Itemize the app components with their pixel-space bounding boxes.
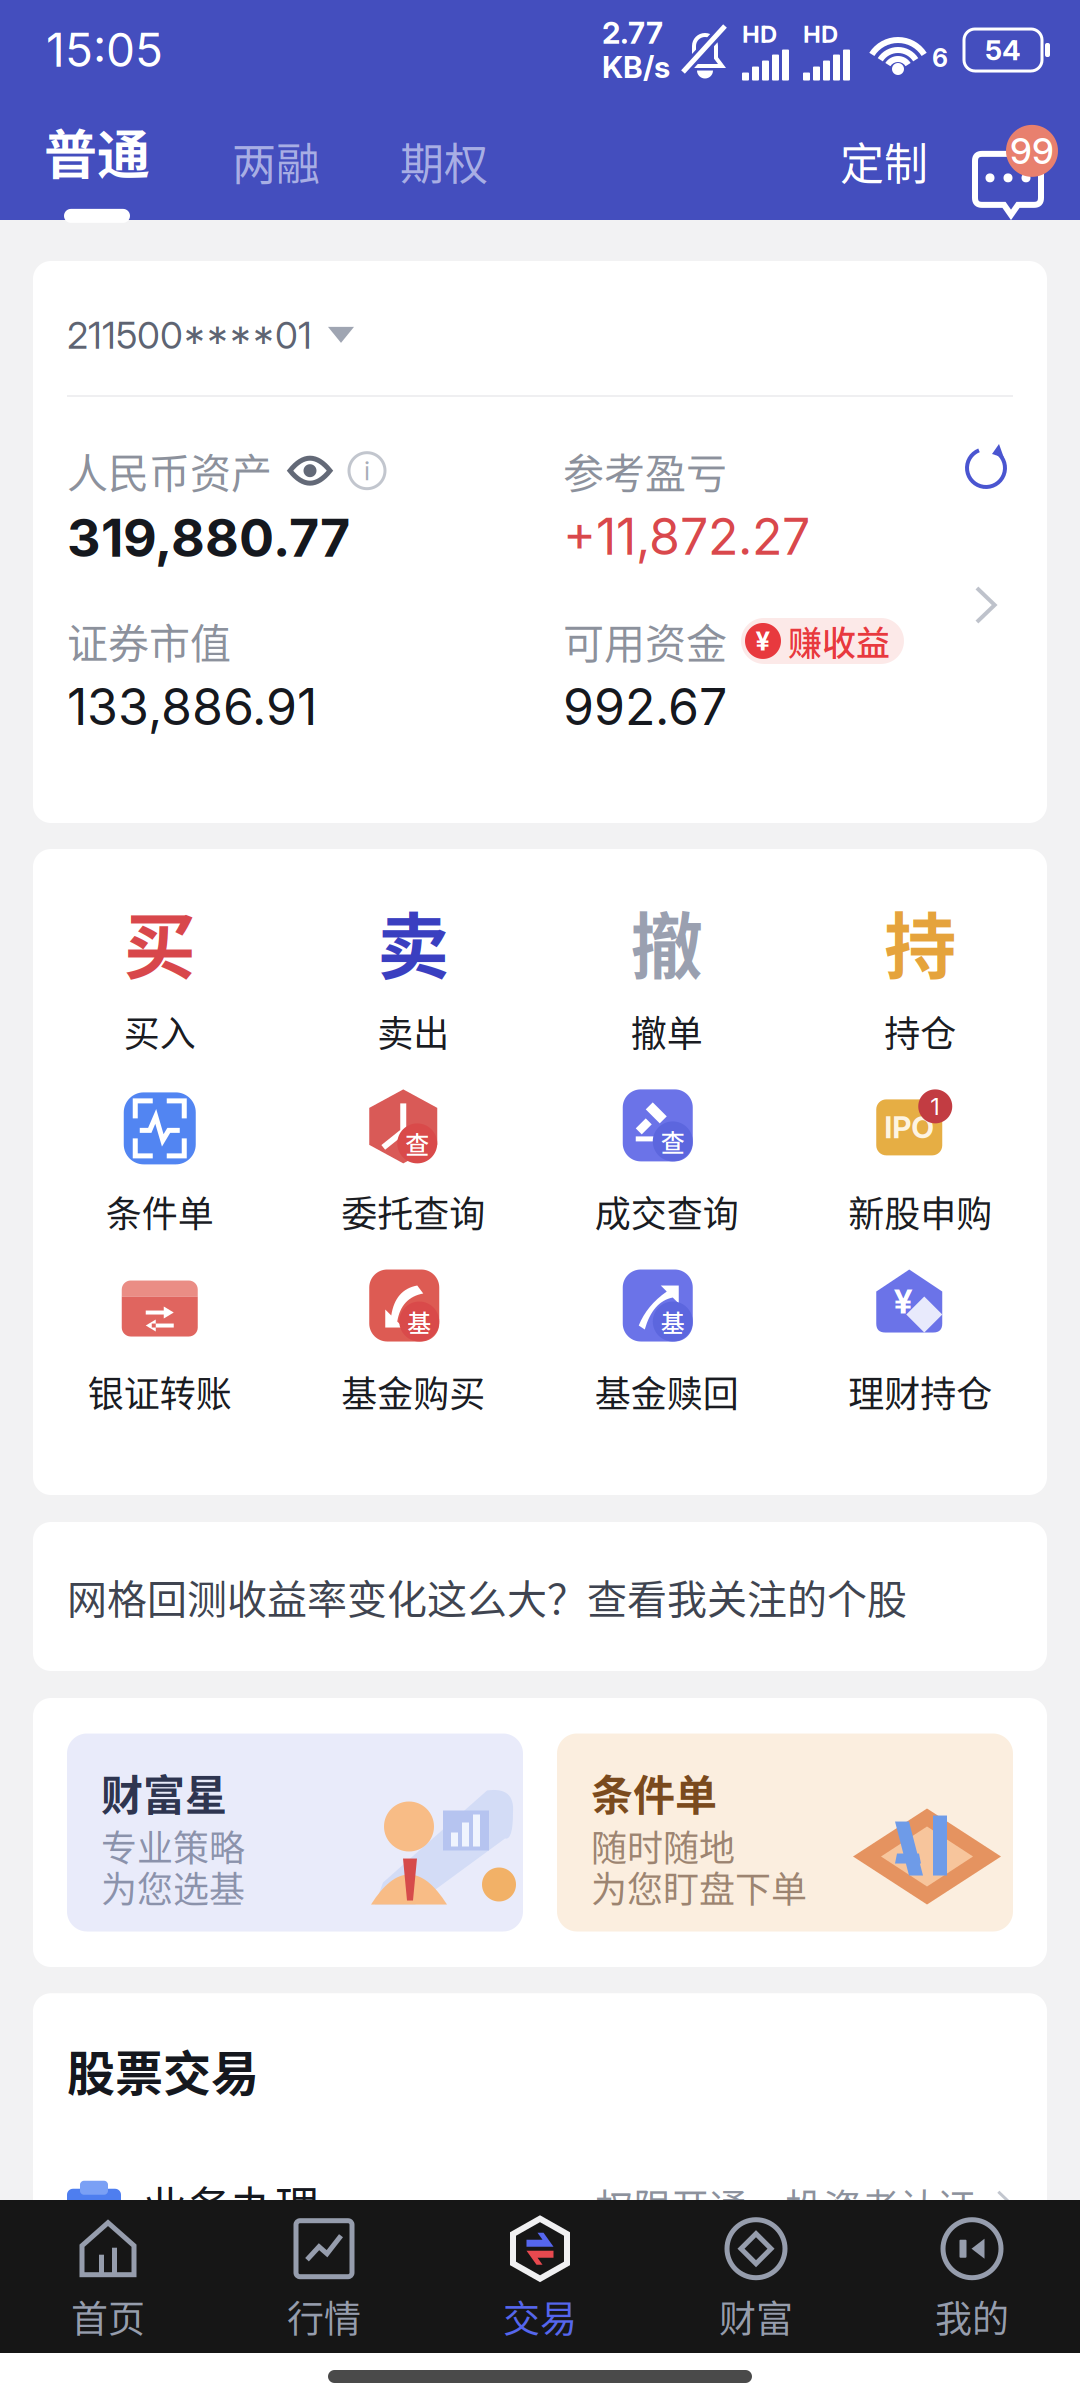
- staticText: i: [364, 455, 370, 486]
- staticText: 卖: [377, 889, 449, 993]
- button[interactable]: 我的: [864, 2194, 1080, 2359]
- staticText: 首页: [71, 2290, 145, 2343]
- button[interactable]: 消息: [928, 125, 1080, 223]
- button[interactable]: 交易: [432, 2194, 648, 2359]
- staticText: 查: [661, 1124, 685, 1159]
- button[interactable]: 财富: [648, 2194, 864, 2359]
- staticText: 股票交易: [67, 2035, 259, 2105]
- staticText: 两融: [232, 129, 320, 193]
- staticText: 可用资金: [563, 611, 727, 671]
- staticText: 网格回测收益率变化这么大？查看我关注的个股: [67, 1567, 907, 1625]
- button[interactable]: 两融: [192, 129, 360, 223]
- button[interactable]: IPO: [793, 1089, 1047, 1237]
- staticText: 54: [985, 33, 1021, 67]
- staticText: 证券市值: [67, 611, 231, 671]
- button[interactable]: 业务办理: [33, 2157, 1047, 2253]
- button[interactable]: 银证转账: [33, 1269, 286, 1418]
- button[interactable]: 持: [793, 889, 1047, 1057]
- staticText: 新股申购: [848, 1185, 992, 1237]
- staticText: 条件单: [106, 1185, 214, 1237]
- staticText: 基: [661, 1304, 685, 1339]
- staticText: 992.67: [563, 677, 727, 737]
- staticText: HD: [742, 19, 777, 48]
- button[interactable]: 买: [33, 889, 286, 1057]
- staticText: 普通: [44, 113, 150, 190]
- button[interactable]: 首页: [0, 2194, 216, 2359]
- button[interactable]: 卖: [286, 889, 540, 1057]
- staticText: 买: [124, 889, 196, 993]
- button[interactable]: 条件单: [33, 1089, 286, 1237]
- staticText: 基金购买: [341, 1365, 485, 1418]
- staticText: 持仓: [884, 1005, 956, 1057]
- staticText: 撤: [631, 889, 703, 993]
- staticText: 人民币资产: [67, 441, 272, 500]
- staticText: IPO: [884, 1109, 934, 1145]
- staticText: 133,886.91: [67, 677, 317, 737]
- button[interactable]: 定制: [840, 129, 928, 223]
- button[interactable]: 查: [540, 1089, 793, 1237]
- staticText: 交易: [503, 2290, 577, 2343]
- staticText: 卖出: [377, 1005, 449, 1057]
- staticText: 查: [405, 1126, 429, 1161]
- staticText: 211500****01: [67, 313, 312, 358]
- staticText: 买入: [124, 1005, 196, 1057]
- staticText: 我的: [935, 2290, 1009, 2343]
- staticText: 行情: [287, 2290, 361, 2343]
- button[interactable]: 基: [286, 1269, 540, 1418]
- staticText: 随时随地: [591, 1820, 735, 1872]
- staticText: 委托查询: [341, 1185, 485, 1237]
- button[interactable]: 查: [286, 1089, 540, 1237]
- button[interactable]: 网格回测收益率变化这么大？查看我关注的个股: [33, 1522, 1047, 1671]
- staticText: 基: [407, 1304, 431, 1339]
- button[interactable]: 普通: [0, 97, 192, 223]
- staticText: 财富: [719, 2290, 793, 2343]
- staticText: 专业策略: [101, 1820, 245, 1872]
- staticText: 参考盈亏: [563, 441, 727, 500]
- staticText: ¥: [755, 625, 770, 657]
- staticText: 银证转账: [88, 1365, 232, 1418]
- staticText: 为您盯盘下单: [591, 1861, 807, 1913]
- staticText: 1: [930, 1092, 940, 1121]
- staticText: 6: [932, 43, 948, 73]
- staticText: 15:05: [46, 22, 163, 78]
- button[interactable]: 撤: [540, 889, 793, 1057]
- button[interactable]: 财富星: [67, 1733, 523, 1931]
- staticText: 撤单: [631, 1005, 703, 1057]
- staticText: 业务办理: [143, 2173, 319, 2237]
- staticText: +11,872.27: [563, 506, 810, 567]
- staticText: 2.77: [602, 15, 663, 51]
- staticText: 条件单: [591, 1762, 717, 1823]
- staticText: 为您选基: [101, 1861, 245, 1913]
- staticText: KB/s: [602, 49, 670, 85]
- button[interactable]: 行情: [216, 2194, 432, 2359]
- staticText: 持: [884, 889, 956, 993]
- button[interactable]: 期权: [360, 129, 528, 223]
- staticText: 基金赎回: [595, 1365, 739, 1418]
- button[interactable]: 211500****01: [33, 261, 1047, 395]
- button[interactable]: ¥: [793, 1269, 1047, 1418]
- staticText: 理财持仓: [848, 1365, 992, 1418]
- staticText: 成交查询: [595, 1185, 739, 1237]
- button[interactable]: 基: [540, 1269, 793, 1418]
- button[interactable]: 条件单: [557, 1733, 1013, 1931]
- staticText: 319,880.77: [67, 506, 350, 569]
- staticText: 定制: [840, 129, 928, 193]
- staticText: ¥: [894, 1280, 913, 1321]
- staticText: 权限开通、投资者认证: [595, 2177, 975, 2232]
- staticText: 赚收益: [788, 616, 890, 666]
- staticText: 99: [1010, 129, 1054, 173]
- staticText: 期权: [400, 129, 488, 193]
- staticText: 财富星: [101, 1762, 227, 1823]
- button[interactable]: 人民币资产: [33, 397, 1047, 777]
- staticText: HD: [803, 19, 838, 48]
